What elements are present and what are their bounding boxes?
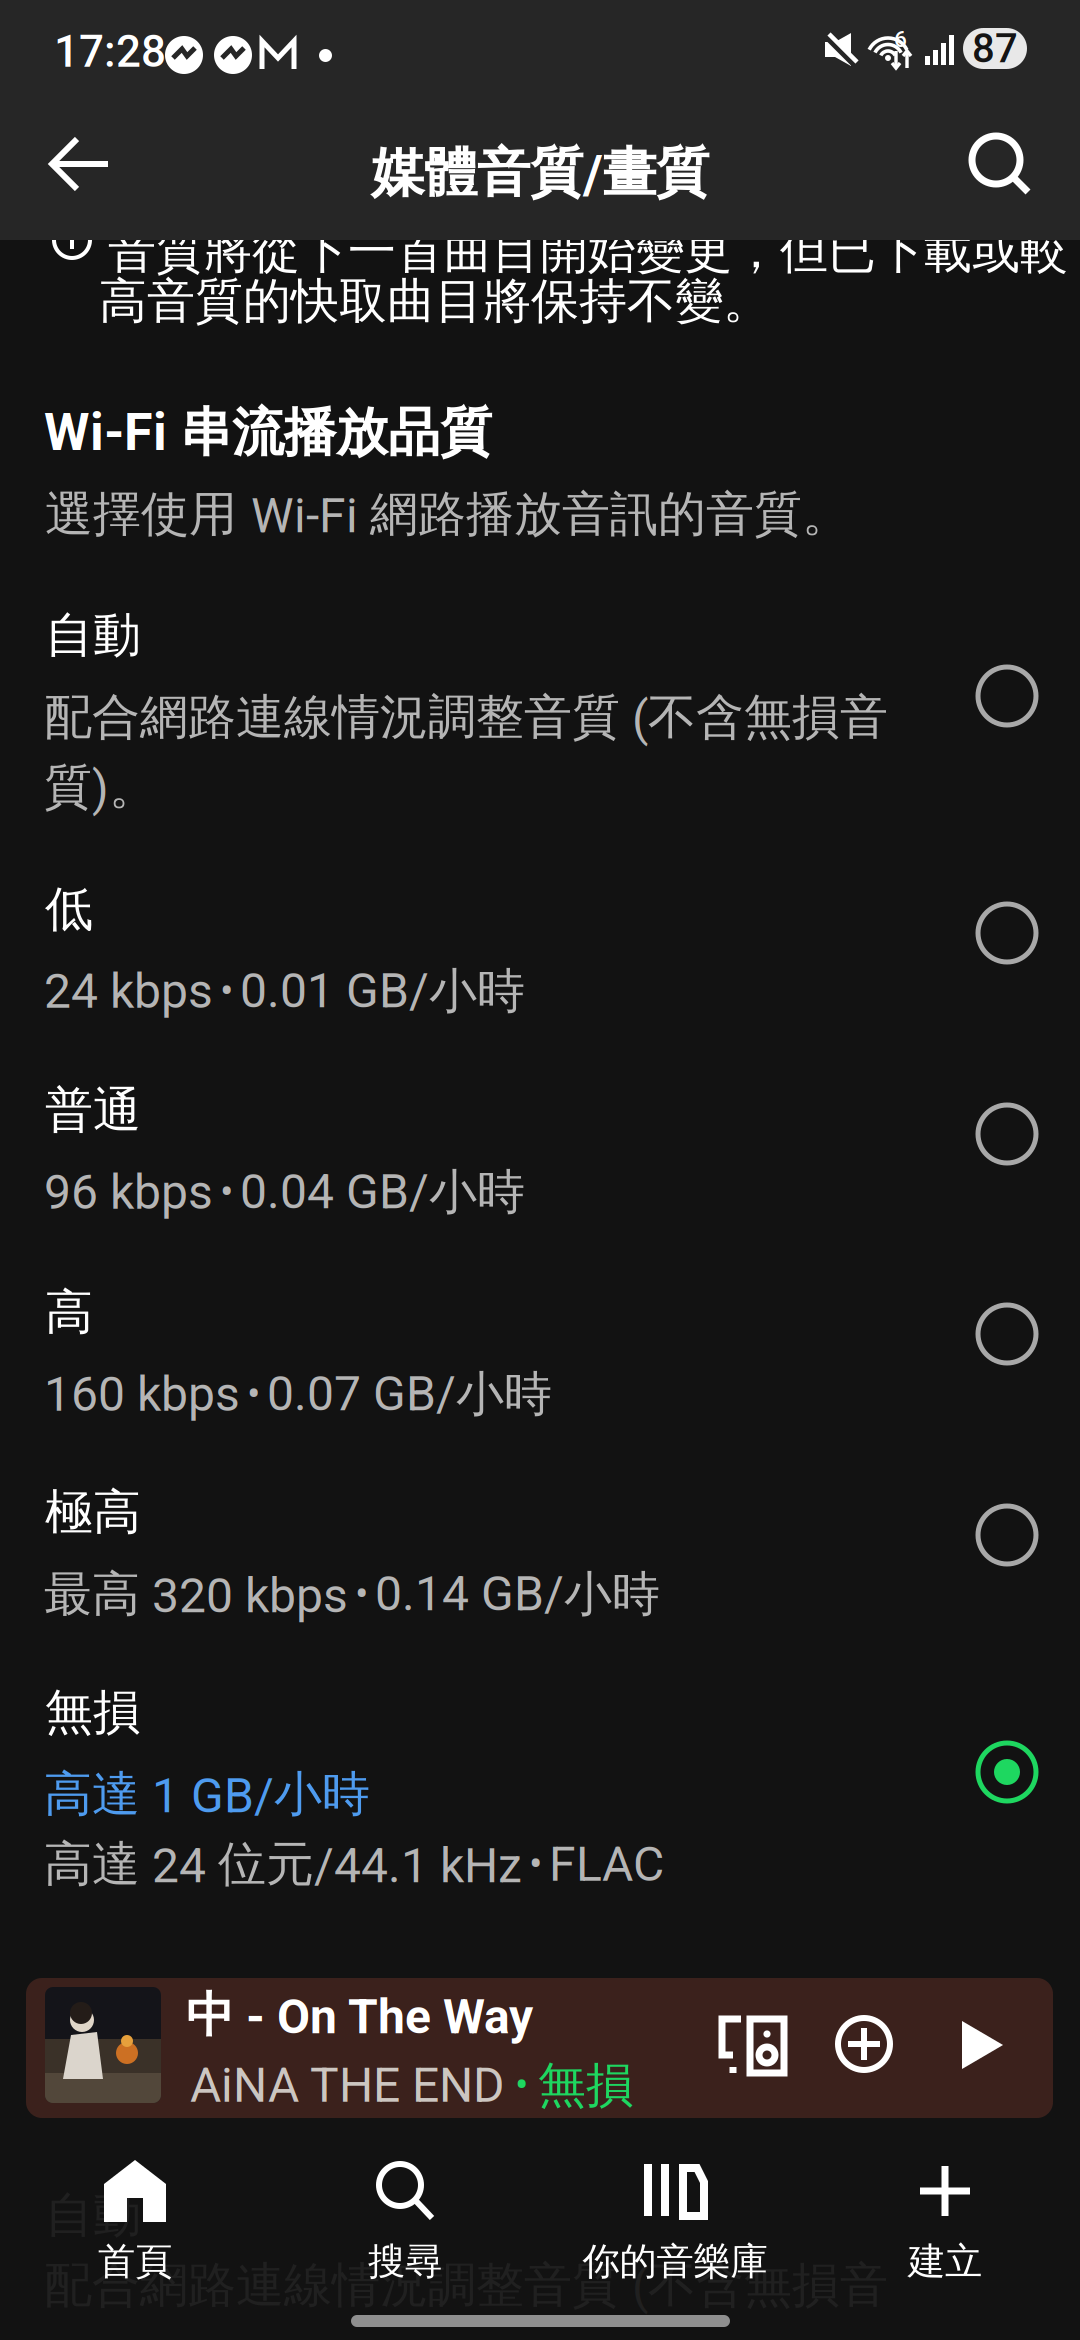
button[interactable]: 連接裝置 <box>706 2003 800 2089</box>
staticText: 87 <box>972 25 1018 72</box>
staticText: 0.07 GB/小時 <box>267 1364 552 1424</box>
button[interactable]: 無損 <box>0 1682 1080 1904</box>
staticText: 無損 <box>45 1682 141 1742</box>
staticText: 音質將從下一首曲目開始變更，但已下載或較 <box>108 221 1068 281</box>
staticText: 無損 <box>538 2055 634 2115</box>
staticText: 質)。 <box>44 757 157 817</box>
staticText: • <box>529 1841 542 1888</box>
button[interactable]: 高 <box>0 1282 1080 1434</box>
staticText: • <box>355 1571 368 1618</box>
staticText: 配合網路連線情況調整音質 (不含無損音 <box>44 687 888 747</box>
button[interactable]: 搜尋 <box>270 2160 540 2320</box>
staticText: FLAC <box>549 1836 664 1892</box>
button[interactable]: 自動 <box>0 605 1080 827</box>
staticText: 搜尋 <box>368 2238 442 2285</box>
staticText: 最高 320 kbps <box>44 1564 348 1624</box>
button[interactable]: 返回 <box>28 112 130 216</box>
staticText: 高 <box>45 1282 93 1342</box>
staticText: 0.14 GB/小時 <box>375 1564 660 1624</box>
button[interactable]: 建立 <box>810 2160 1080 2320</box>
staticText: 你的音樂庫 <box>582 2238 767 2285</box>
button[interactable]: 加入音樂庫 <box>825 2005 903 2083</box>
staticText: Wi-Fi 串流播放品質 <box>44 400 492 465</box>
button[interactable]: 播放 <box>946 2006 1018 2084</box>
button[interactable]: 正在播放：道中 - On The Way，AiNA THE END <box>26 1978 1053 2118</box>
staticText: 17:28 <box>54 26 166 78</box>
staticText: 建立 <box>908 2238 982 2285</box>
staticText: 媒體音質/畫質 <box>371 139 709 207</box>
staticText: 選擇使用 Wi-Fi 網路播放音訊的音質。 <box>45 484 850 544</box>
staticText: 96 kbps <box>44 1164 213 1220</box>
button[interactable]: 首頁 <box>0 2160 270 2320</box>
staticText: 24 kbps <box>44 963 213 1019</box>
staticText: 0.04 GB/小時 <box>240 1162 525 1222</box>
staticText: • <box>220 1169 233 1216</box>
staticText: 極高 <box>45 1482 141 1542</box>
staticText: 160 kbps <box>44 1366 240 1422</box>
button[interactable]: 搜尋 <box>949 112 1051 215</box>
staticText: 中 - On The Way <box>186 1985 533 2045</box>
staticText: 高音質的快取曲目將保持不變。 <box>99 271 771 331</box>
button[interactable]: 極高 <box>0 1482 1080 1634</box>
staticText: 高達 1 GB/小時 <box>44 1764 370 1824</box>
staticText: • <box>515 2062 528 2109</box>
staticText: 配合網路連線情況調整音質 (不含無損音 <box>44 2255 888 2315</box>
staticText: • <box>247 1371 260 1418</box>
staticText: 普通 <box>45 1080 141 1140</box>
staticText: • <box>220 968 233 1015</box>
staticText: AiNA THE END <box>190 2057 505 2113</box>
staticText: 0.01 GB/小時 <box>240 961 525 1021</box>
button[interactable]: 你的音樂庫 <box>540 2160 810 2320</box>
staticText: 自動 <box>45 605 141 665</box>
staticText: 自動 <box>45 2185 141 2245</box>
button[interactable]: 普通 <box>0 1080 1080 1232</box>
staticText: 低 <box>45 879 93 939</box>
staticText: 6 <box>894 26 907 53</box>
staticText: 高達 24 位元/44.1 kHz <box>44 1834 522 1894</box>
button[interactable]: 低 <box>0 879 1080 1031</box>
staticText: 首頁 <box>98 2238 172 2285</box>
